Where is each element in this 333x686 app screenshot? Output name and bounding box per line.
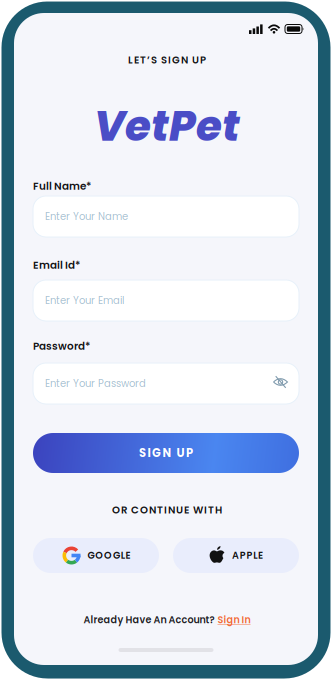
staticText: I: [164, 503, 167, 517]
staticText: L: [253, 549, 257, 562]
staticText: Already Have An Account?: [83, 613, 214, 627]
staticText: A: [232, 549, 239, 562]
button[interactable]: Full Name: [33, 196, 299, 237]
staticText: L: [121, 549, 125, 562]
staticText: Enter Your Email: [45, 293, 124, 307]
staticText: U: [192, 53, 199, 67]
staticText: P: [186, 445, 193, 461]
staticText: O: [104, 549, 112, 562]
staticText: T: [208, 503, 214, 517]
staticText: G: [87, 549, 94, 562]
button[interactable]: Sign In: [217, 613, 250, 627]
staticText: Enter Your Name: [45, 209, 128, 223]
staticText: O: [140, 503, 148, 517]
staticText: E: [258, 549, 263, 562]
staticText: U: [176, 445, 184, 461]
staticText: ’: [147, 53, 150, 67]
staticText: O: [112, 503, 120, 517]
staticText: N: [162, 445, 171, 461]
staticText: S: [139, 445, 146, 461]
staticText: H: [215, 503, 222, 517]
staticText: T: [140, 53, 146, 67]
staticText: G: [113, 549, 120, 562]
staticText: L: [128, 53, 133, 67]
staticText: P: [240, 549, 246, 562]
staticText: O: [95, 549, 103, 562]
staticText: P: [200, 53, 206, 67]
staticText: Sign In: [217, 613, 250, 627]
staticText: E: [125, 549, 130, 562]
staticText: R: [121, 503, 127, 517]
staticText: G: [152, 445, 161, 461]
staticText: S: [161, 53, 167, 67]
staticText: Enter Your Password: [45, 376, 146, 390]
staticText: I: [204, 503, 207, 517]
staticText: VetPet: [94, 97, 240, 155]
staticText: T: [157, 503, 163, 517]
staticText: N: [149, 503, 156, 517]
button[interactable]: G: [33, 538, 159, 573]
staticText: E: [184, 503, 189, 517]
button[interactable]: Show Password: [272, 375, 288, 389]
staticText: P: [246, 549, 252, 562]
staticText: Email Id*: [33, 258, 80, 272]
staticText: G: [172, 53, 180, 67]
button[interactable]: Email Id: [33, 280, 299, 321]
staticText: C: [131, 503, 139, 517]
staticText: Full Name*: [33, 179, 91, 193]
staticText: N: [168, 503, 175, 517]
button[interactable]: Password: [33, 363, 299, 404]
button[interactable]: S: [33, 433, 299, 473]
button[interactable]: A: [173, 538, 299, 573]
staticText: N: [181, 53, 188, 67]
staticText: I: [147, 445, 150, 461]
staticText: Password*: [33, 339, 90, 353]
staticText: U: [176, 503, 183, 517]
staticText: S: [151, 53, 157, 67]
staticText: W: [193, 503, 203, 517]
staticText: I: [168, 53, 171, 67]
staticText: E: [134, 53, 139, 67]
